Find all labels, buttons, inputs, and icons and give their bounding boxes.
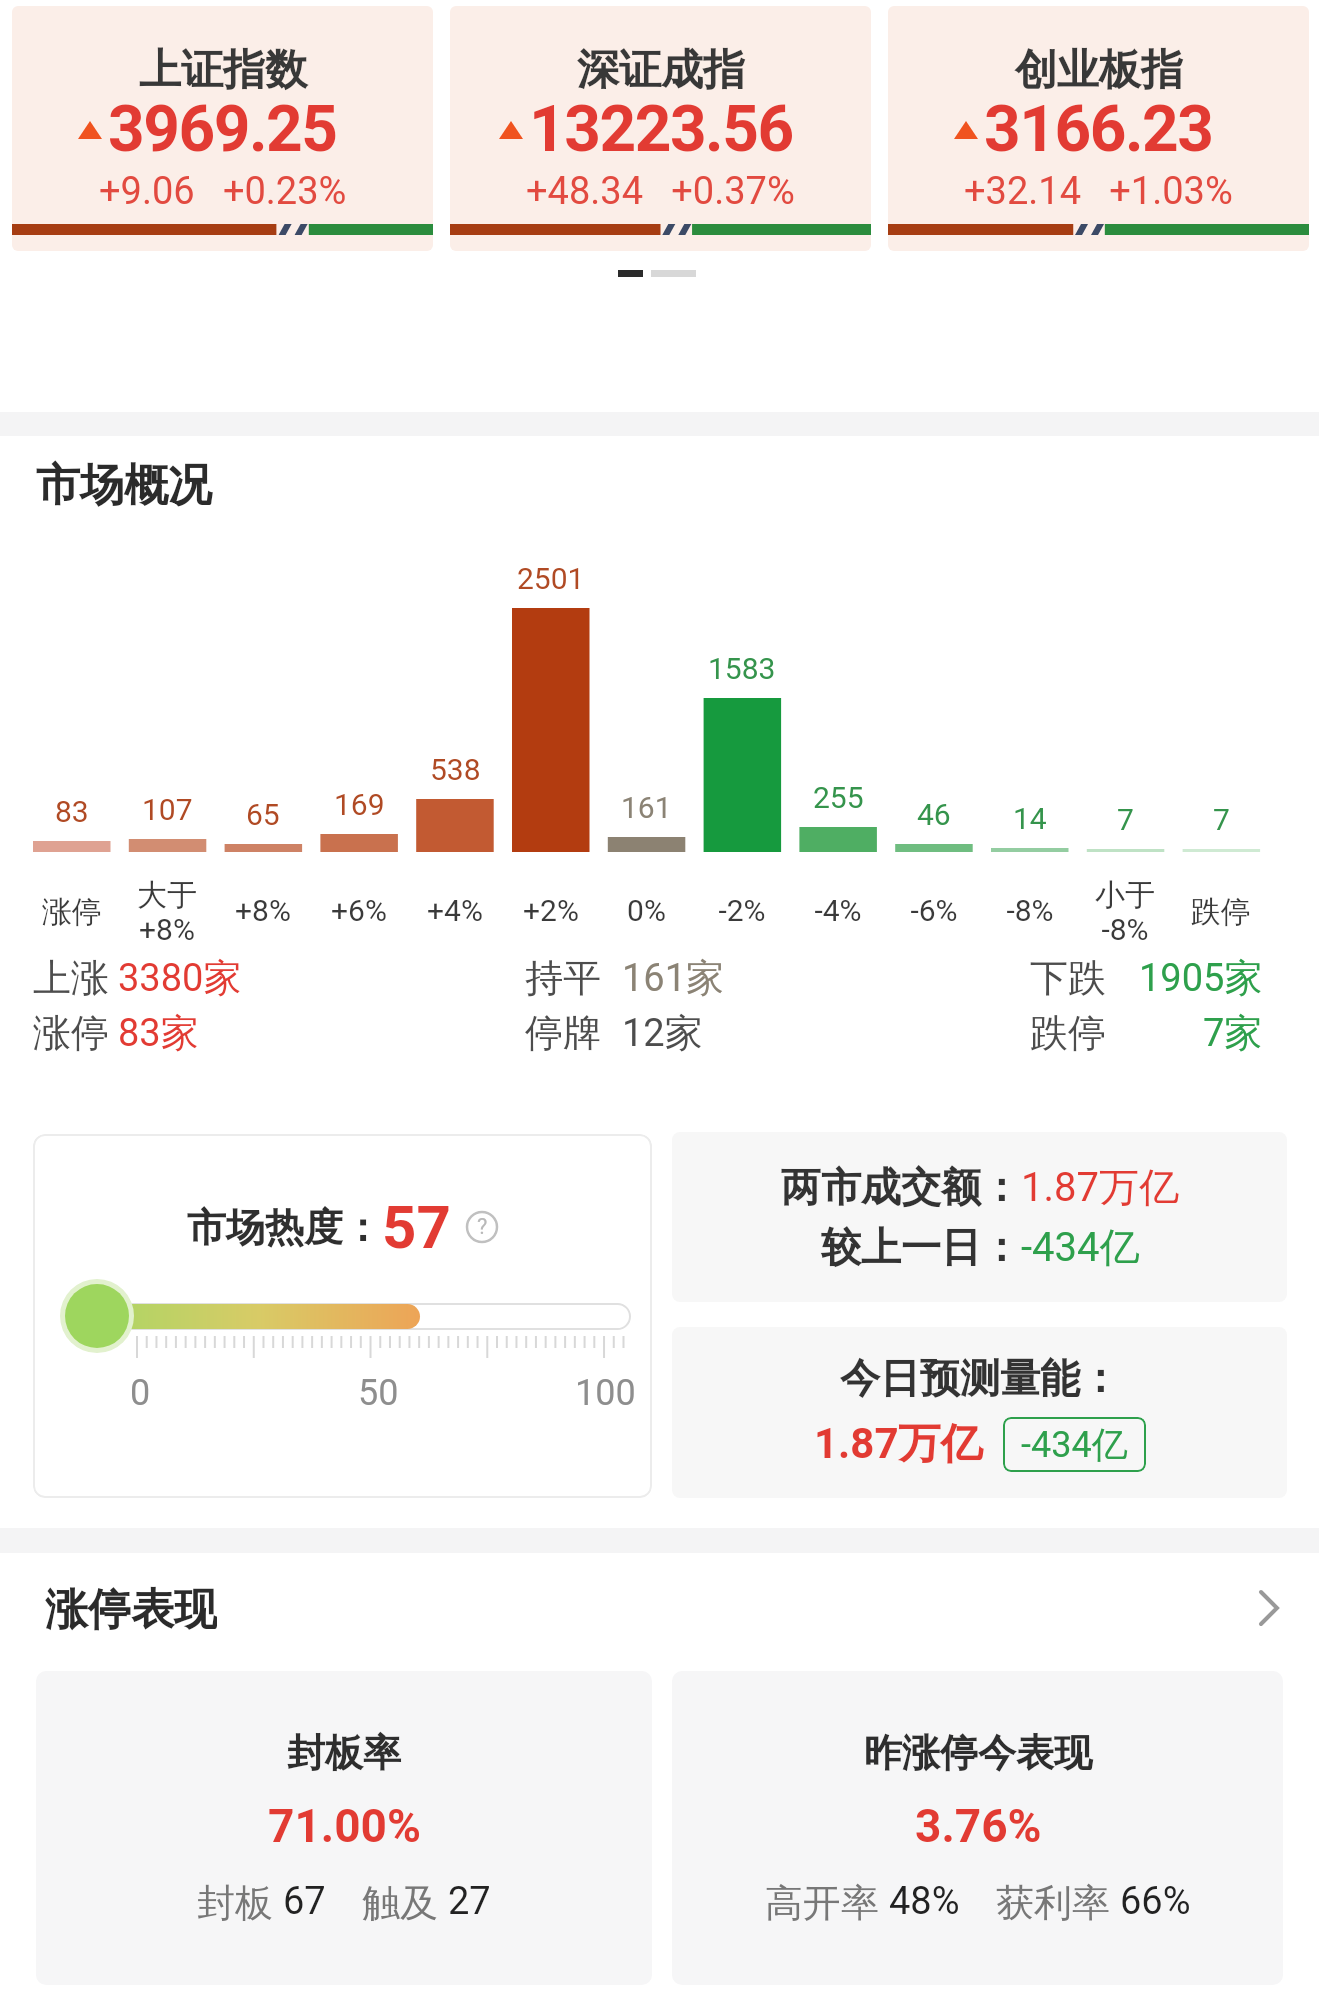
button[interactable]: 上证指数 [12, 6, 433, 251]
staticText: 3969.25 [108, 92, 337, 167]
staticText: 创业板指 [1015, 44, 1183, 97]
staticText: 持平 [525, 954, 601, 1002]
staticText: 小于 -8% [1095, 876, 1155, 947]
staticText: 3166.23 [984, 92, 1213, 167]
staticText: 高开率 [765, 1879, 889, 1927]
staticText: 停牌 [525, 1009, 601, 1057]
button[interactable]: 封板率 [36, 1671, 652, 1985]
staticText: 57 [382, 1192, 451, 1262]
staticText: 7 [1213, 802, 1230, 837]
staticText: 7 [1117, 802, 1134, 837]
staticText: 161 [621, 790, 672, 825]
staticText: 3.76% [915, 1799, 1042, 1853]
staticText: 较上一日： [821, 1222, 1021, 1272]
staticText: 上证指数 [139, 44, 307, 97]
staticText: 上涨 [33, 954, 109, 1002]
staticText: +4% [427, 893, 483, 928]
staticText: +2% [523, 893, 579, 928]
staticText: 今日预测量能： [840, 1353, 1120, 1403]
staticText: 1583 [708, 651, 776, 686]
staticText: 14 [1013, 801, 1047, 836]
staticText: 昨涨停今表现 [864, 1729, 1092, 1777]
staticText: 107 [142, 792, 193, 827]
staticText: 2501 [517, 561, 585, 596]
staticText: 封板率 [287, 1729, 401, 1777]
staticText: 下跌 [1030, 954, 1106, 1002]
staticText: 48% [889, 1879, 960, 1924]
staticText: 66% [1120, 1879, 1191, 1924]
staticText: 65 [246, 797, 280, 832]
staticText: 538 [430, 752, 481, 787]
staticText: 1905家 [1139, 954, 1263, 1002]
staticText: 13223.56 [529, 92, 793, 167]
staticText: 两市成交额： [781, 1162, 1021, 1212]
staticText: 1.87万亿 [1021, 1162, 1179, 1212]
staticText: 大于 +8% [137, 876, 197, 947]
staticText: 12家 [622, 1009, 703, 1057]
button[interactable]: 昨涨停今表现 [672, 1671, 1283, 1985]
staticText: 跌停 [1191, 893, 1251, 931]
staticText: 27 [448, 1879, 491, 1924]
staticText: 83 [55, 794, 89, 829]
staticText: +48.34 +0.37% [526, 169, 795, 214]
staticText: ? [477, 1214, 488, 1240]
staticText: 深证成指 [577, 44, 745, 97]
staticText: 涨停表现 [45, 1583, 217, 1633]
staticText: 169 [334, 787, 385, 822]
staticText: 161家 [622, 954, 725, 1002]
staticText: -2% [718, 893, 766, 928]
staticText: 50 [358, 1372, 399, 1414]
staticText: 获利率 [996, 1879, 1120, 1927]
staticText: 71.00% [268, 1799, 421, 1853]
button[interactable]: 深证成指 [450, 6, 871, 251]
staticText: 3380家 [118, 954, 242, 1002]
staticText: 市场概况 [36, 458, 212, 513]
staticText: 67 [283, 1879, 326, 1924]
button[interactable]: 两市成交额： [672, 1132, 1287, 1302]
staticText: 涨停 [42, 893, 102, 931]
staticText: 封板 [197, 1879, 283, 1927]
staticText: 触及 [362, 1879, 448, 1927]
staticText: 46 [917, 797, 951, 832]
button[interactable]: 今日预测量能： [672, 1327, 1287, 1498]
staticText: -434亿 [1021, 1422, 1128, 1467]
staticText: 7家 [1203, 1009, 1263, 1057]
staticText: +6% [331, 893, 387, 928]
staticText: 83家 [118, 1009, 199, 1057]
staticText: -434亿 [1021, 1222, 1140, 1272]
staticText: +32.14 +1.03% [964, 169, 1233, 214]
staticText: 255 [813, 780, 864, 815]
staticText: +9.06 +0.23% [99, 169, 347, 214]
staticText: +8% [235, 893, 291, 928]
staticText: 0 [130, 1372, 151, 1414]
staticText: 跌停 [1030, 1009, 1106, 1057]
button[interactable]: 市场热度： [33, 1134, 652, 1498]
staticText: -8% [1006, 893, 1054, 928]
staticText: 1.87万亿 [814, 1418, 983, 1471]
staticText: 0% [627, 893, 666, 928]
button[interactable]: 创业板指 [888, 6, 1309, 251]
staticText: 100 [575, 1372, 636, 1414]
button[interactable]: 涨停表现 [0, 1583, 1319, 1633]
staticText: -6% [910, 893, 958, 928]
staticText: -4% [814, 893, 862, 928]
staticText: 市场热度： [187, 1203, 382, 1252]
staticText: 涨停 [33, 1009, 109, 1057]
